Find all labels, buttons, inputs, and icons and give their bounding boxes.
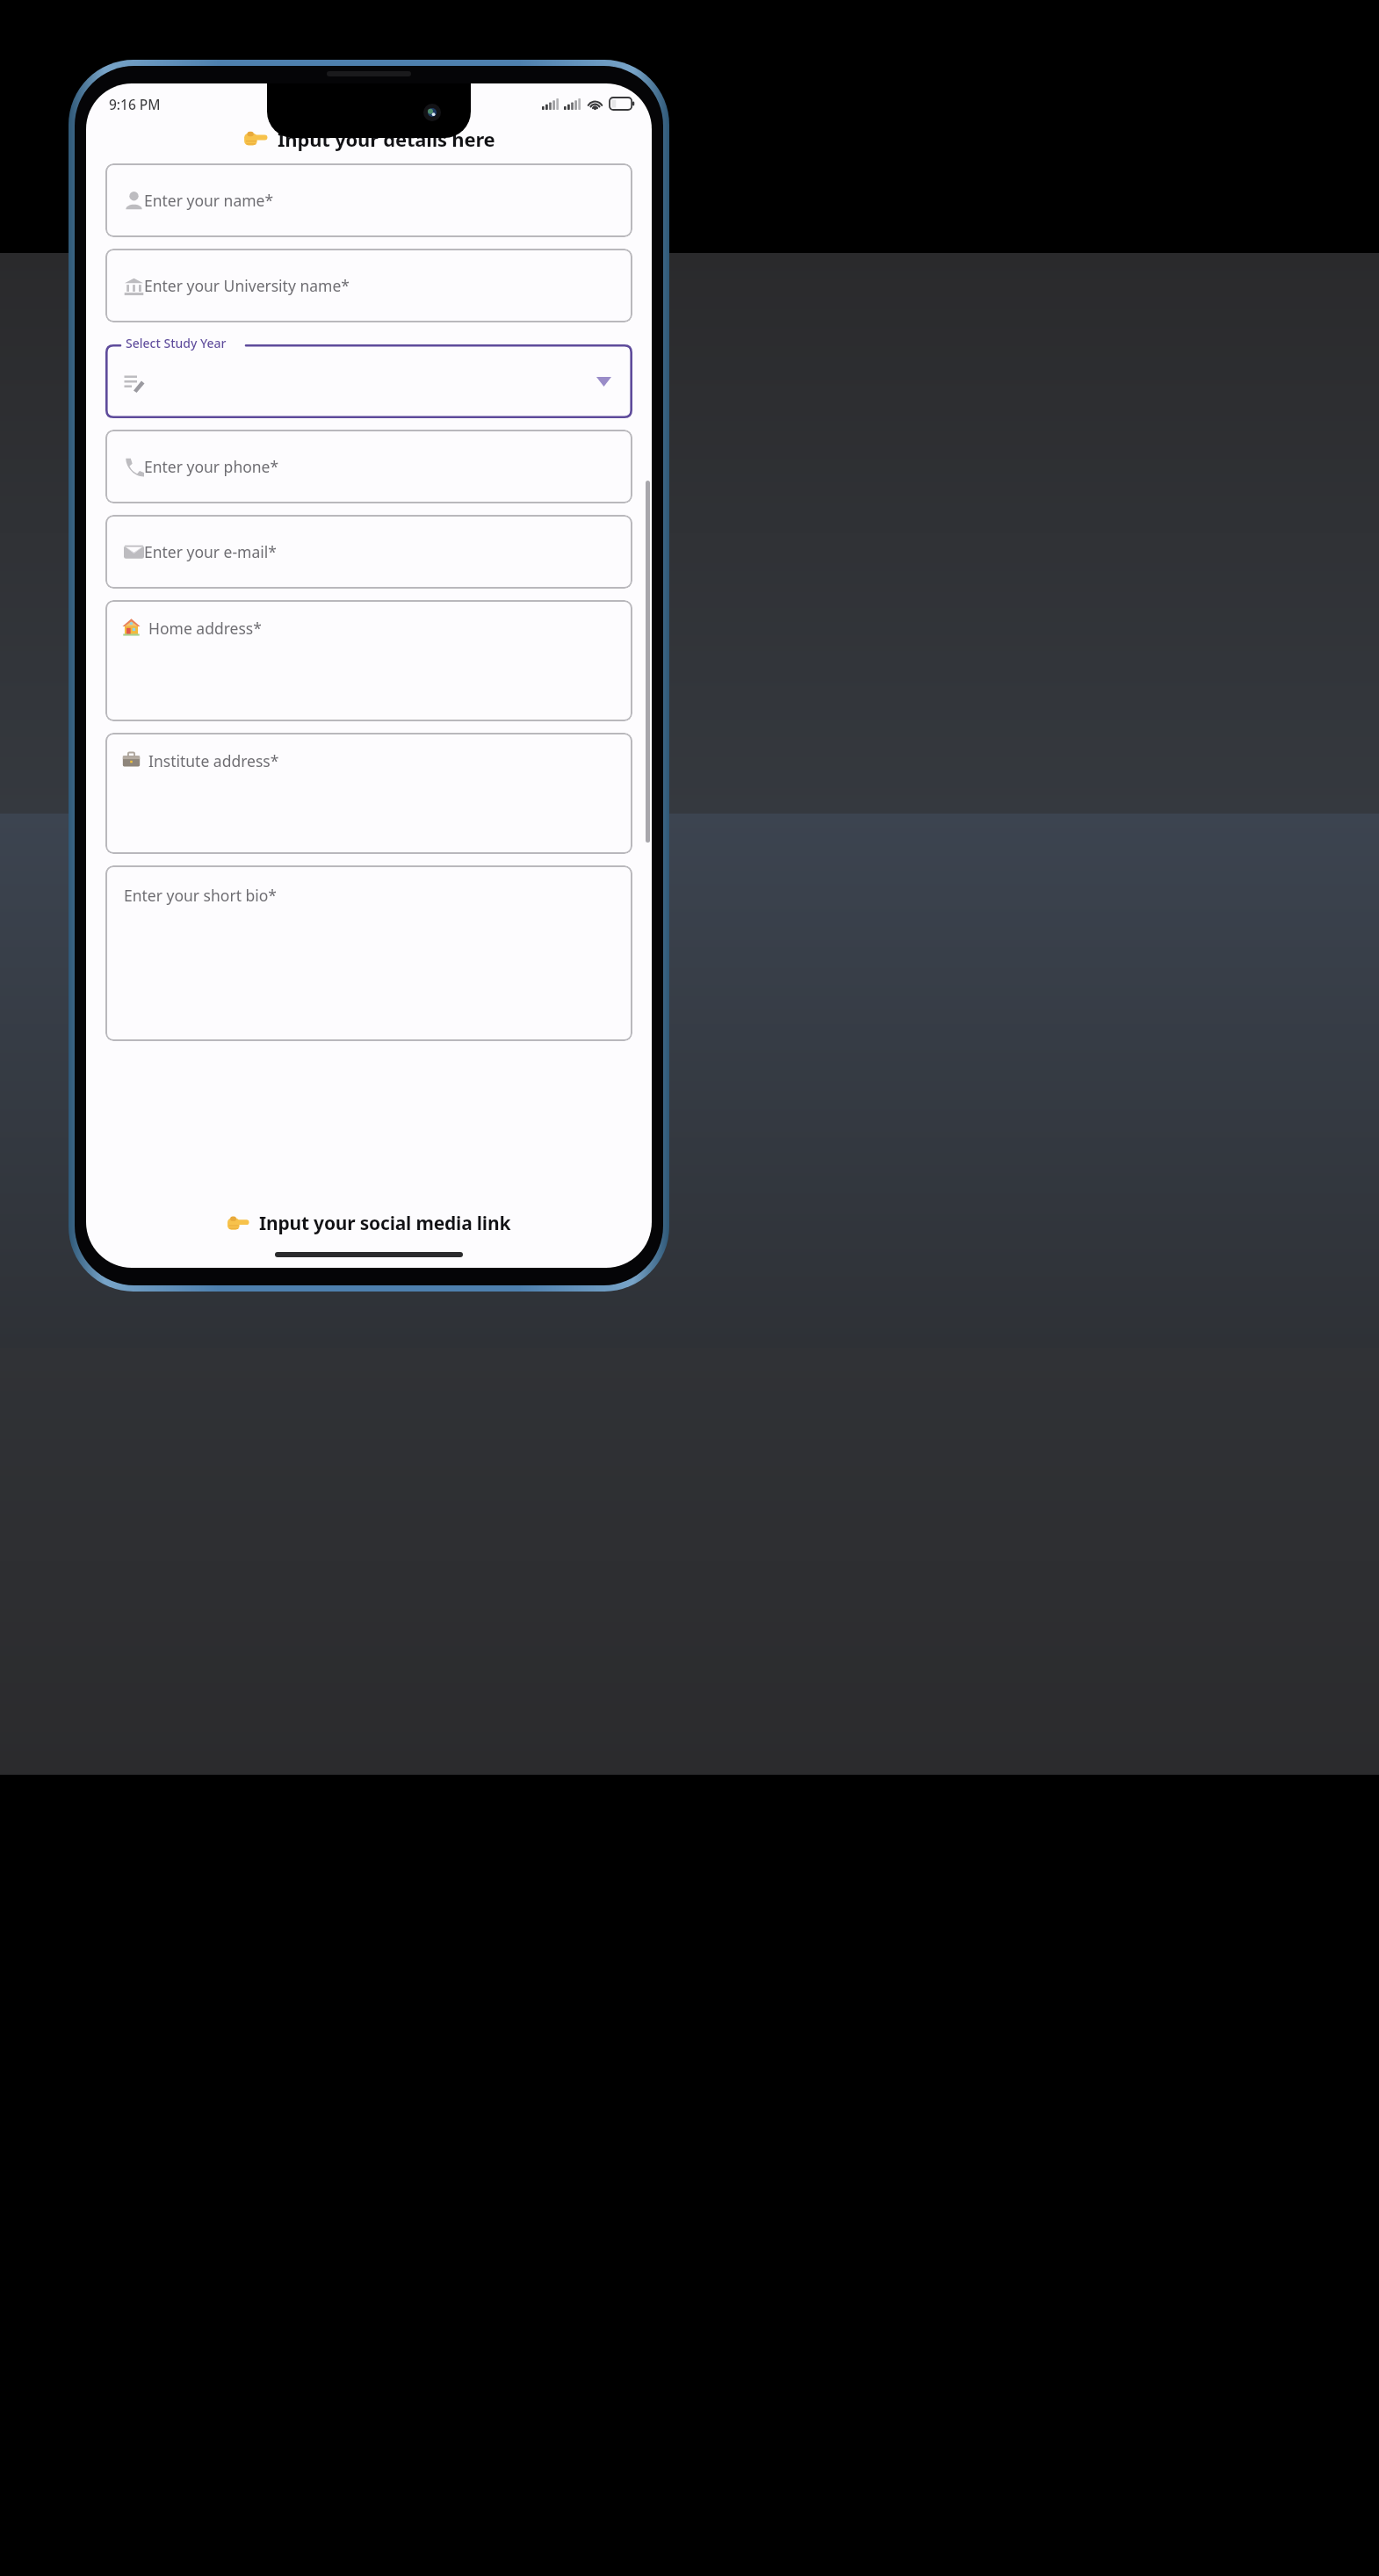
button[interactable]: Enter your name* <box>105 163 632 237</box>
button[interactable]: Enter your e-mail* <box>105 515 632 589</box>
staticText: Input your social media link <box>259 1211 511 1236</box>
staticText: Enter your short bio* <box>124 885 278 906</box>
staticText: 9:16 PM <box>109 95 161 113</box>
button[interactable]: Open study year list <box>105 344 632 418</box>
button[interactable]: Home address* <box>105 600 632 721</box>
staticText: Select Study Year <box>126 335 227 351</box>
staticText: Enter your phone* <box>144 456 279 477</box>
staticText: Home address* <box>148 618 262 639</box>
button[interactable]: Institute address* <box>105 733 632 854</box>
button[interactable]: Enter your University name* <box>105 249 632 322</box>
staticText: Institute address* <box>148 750 279 771</box>
staticText: Enter your University name* <box>144 275 350 296</box>
button[interactable]: Enter your short bio* <box>105 865 632 1041</box>
staticText: Input your details here <box>278 126 495 152</box>
button[interactable]: Enter your phone* <box>105 430 632 503</box>
staticText: Enter your e-mail* <box>144 541 277 562</box>
staticText: Enter your name* <box>144 190 274 211</box>
other: Open study year list <box>596 377 611 387</box>
